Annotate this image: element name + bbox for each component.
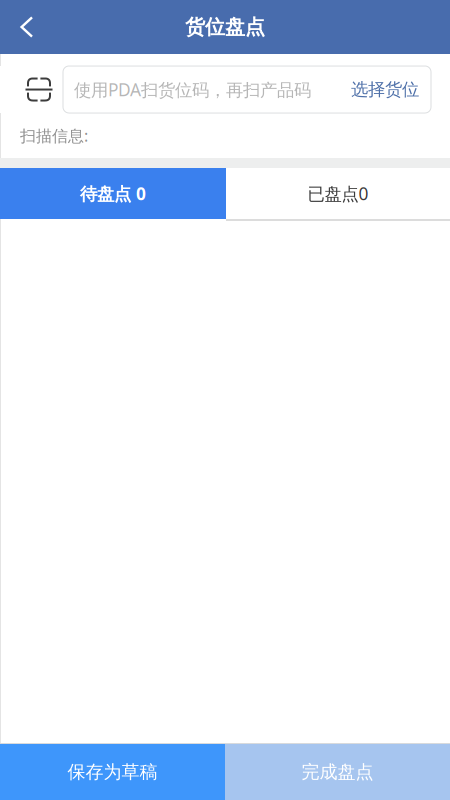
button[interactable]: Back: [0, 0, 50, 54]
staticText: 完成盘点: [301, 761, 373, 783]
button[interactable]: 已盘点0: [226, 168, 450, 221]
staticText: 扫描信息:: [20, 125, 88, 146]
staticText: 选择货位: [351, 79, 419, 100]
button[interactable]: 完成盘点: [225, 744, 450, 800]
staticText: 已盘点0: [307, 182, 368, 205]
button[interactable]: 保存为草稿: [0, 744, 225, 800]
staticText: 保存为草稿: [67, 761, 157, 783]
staticText: 待盘点 0: [80, 182, 146, 205]
button[interactable]: 扫描: [0, 66, 63, 113]
staticText: 货位盘点: [185, 15, 265, 39]
button[interactable]: 选择货位: [351, 69, 419, 110]
button[interactable]: 待盘点 0: [0, 168, 226, 219]
staticText: 使用PDA扫货位码，再扫产品码: [74, 78, 311, 101]
